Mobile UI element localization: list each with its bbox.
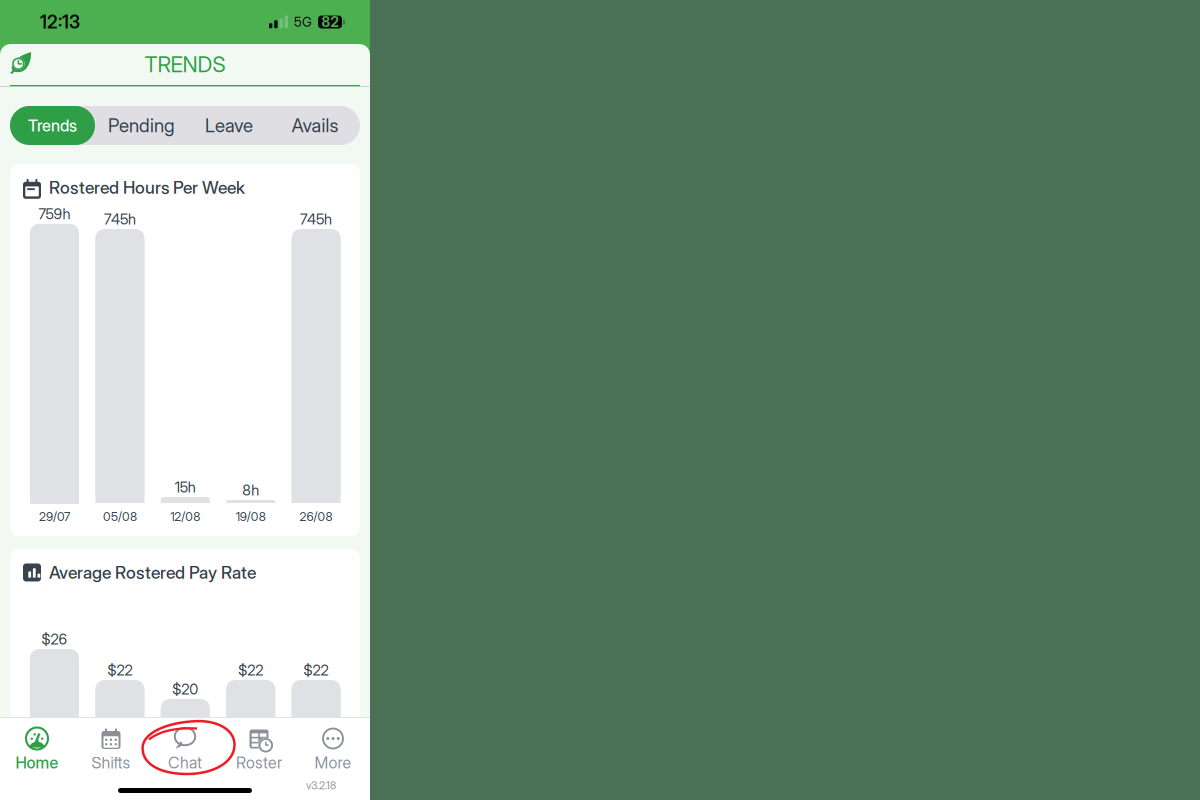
staticText: v3.2.18 xyxy=(306,779,336,792)
button[interactable]: Pending xyxy=(95,106,188,145)
staticText: $22 xyxy=(107,661,132,679)
staticText: Chat xyxy=(168,753,202,772)
button[interactable]: Shifts xyxy=(74,718,148,773)
staticText: More xyxy=(314,753,351,772)
staticText: 15h xyxy=(175,478,196,496)
button[interactable]: Avails xyxy=(270,106,360,145)
staticText: 745h xyxy=(300,210,332,228)
staticText: 19/08 xyxy=(236,509,266,524)
staticText: 5G xyxy=(294,14,312,30)
staticText: Leave xyxy=(205,114,253,137)
button[interactable]: Roster xyxy=(222,718,296,773)
staticText: Pending xyxy=(108,114,175,137)
staticText: $22 xyxy=(304,661,329,679)
staticText: 05/08 xyxy=(103,509,137,524)
staticText: $22 xyxy=(238,661,263,679)
staticText: TRENDS xyxy=(144,52,225,77)
staticText: 82 xyxy=(321,13,338,30)
staticText: Shifts xyxy=(91,753,130,772)
staticText: Trends xyxy=(28,116,77,135)
staticText: 12:13 xyxy=(40,11,80,33)
button[interactable]: Tanda home xyxy=(6,48,36,78)
staticText: 29/07 xyxy=(39,509,70,524)
staticText: 26/08 xyxy=(300,509,333,524)
staticText: Avails xyxy=(291,114,338,137)
button[interactable]: Trends xyxy=(10,106,95,145)
staticText: $20 xyxy=(172,680,198,698)
staticText: $26 xyxy=(41,630,67,648)
staticText: Average Rostered Pay Rate xyxy=(49,562,256,583)
staticText: Home xyxy=(15,753,58,772)
staticText: Rostered Hours Per Week xyxy=(49,177,245,198)
staticText: 759h xyxy=(38,205,70,223)
staticText: 12/08 xyxy=(170,509,200,524)
button[interactable]: More xyxy=(296,718,370,773)
button[interactable]: Home xyxy=(0,718,74,773)
staticText: Roster xyxy=(236,753,282,772)
button[interactable]: Leave xyxy=(188,106,270,145)
staticText: 745h xyxy=(104,210,136,228)
button[interactable]: Chat xyxy=(148,718,222,773)
staticText: 8h xyxy=(242,481,259,499)
